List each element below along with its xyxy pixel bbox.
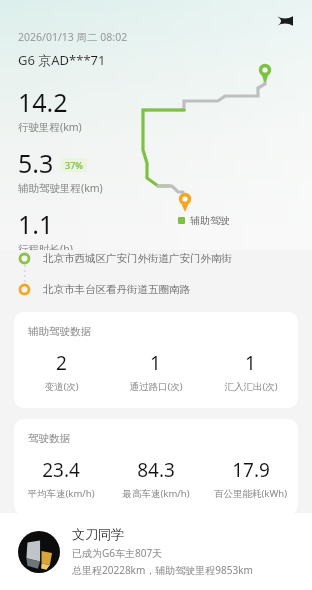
staticText: G6 京AD***71 <box>18 51 106 69</box>
staticText: 百公里能耗(kWh) <box>214 487 287 500</box>
staticText: 总里程20228km，辅助驾驶里程9853km <box>72 563 253 577</box>
staticText: 最高车速(km/h) <box>122 487 190 500</box>
staticText: 北京市丰台区看丹街道五圈南路 <box>43 283 190 296</box>
staticText: 84.3 <box>137 457 175 483</box>
staticText: 2026/01/13 周二 08:02 <box>18 30 128 44</box>
staticText: 汇入汇出(次) <box>224 380 278 393</box>
staticText: 北京市西城区广安门外街道广安门外南街 <box>43 252 232 265</box>
staticText: 文刀同学 <box>72 526 124 542</box>
button[interactable]: 辅助驾驶数据 <box>14 312 298 408</box>
staticText: 17.9 <box>232 457 270 483</box>
staticText: 5.3 <box>18 146 54 180</box>
button[interactable]: Close <box>270 6 300 36</box>
staticText: 已成为G6车主807天 <box>72 546 163 560</box>
staticText: 辅助驾驶里程(km) <box>18 181 103 195</box>
staticText: 1.1 <box>18 207 54 241</box>
button[interactable]: 驾驶数据 <box>14 419 298 515</box>
staticText: 行程时长(h) <box>18 242 73 250</box>
staticText: 23.4 <box>42 457 80 483</box>
staticText: 1 <box>150 350 161 376</box>
staticText: 辅助驾驶数据 <box>28 325 91 338</box>
staticText: 辅助驾驶 <box>190 214 230 227</box>
button[interactable]: 文刀同学 <box>0 513 312 590</box>
staticText: 平均车速(km/h) <box>27 487 95 500</box>
staticText: 变道(次) <box>44 380 79 393</box>
staticText: 14.2 <box>18 85 68 119</box>
staticText: 2 <box>56 350 67 376</box>
staticText: 通过路口(次) <box>129 380 183 393</box>
staticText: 1 <box>245 350 256 376</box>
staticText: 行驶里程(km) <box>18 120 82 134</box>
staticText: 驾驶数据 <box>28 432 70 445</box>
staticText: 37% <box>65 159 83 171</box>
